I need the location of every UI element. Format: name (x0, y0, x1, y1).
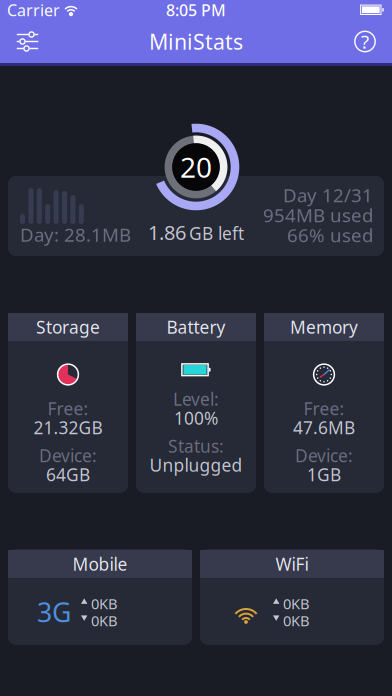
staticText: Unplugged (149, 453, 242, 476)
staticText: 20 (180, 148, 212, 186)
staticText: 66% used (287, 223, 373, 247)
staticText: Free: (47, 397, 88, 420)
staticText: 1.86 (148, 219, 186, 246)
staticText: 8:05 PM (166, 0, 226, 21)
staticText: 100% (174, 406, 218, 429)
staticText: Storage (36, 315, 100, 338)
staticText: 47.6MB (293, 416, 355, 439)
staticText: Day 12/31 (283, 183, 373, 207)
staticText: Level: (173, 387, 219, 410)
button[interactable]: Settings (0, 20, 53, 63)
staticText: 21.32GB (33, 416, 102, 439)
staticText: 1GB (307, 463, 341, 486)
staticText: 64GB (46, 463, 90, 486)
staticText: 0KB (283, 594, 310, 613)
staticText: Device: (295, 444, 353, 467)
staticText: ? (361, 29, 369, 54)
staticText: Device: (39, 444, 97, 467)
staticText: Free: (303, 397, 344, 420)
staticText: 954MB used (263, 203, 373, 227)
staticText: Day: 28.1MB (20, 222, 131, 247)
staticText: 3G (37, 594, 71, 630)
staticText: 0KB (91, 611, 118, 630)
button[interactable]: Help (340, 20, 392, 63)
staticText: GB left (189, 222, 244, 245)
staticText: WiFi (275, 552, 308, 575)
staticText: Carrier (7, 0, 60, 21)
staticText: Status: (168, 434, 224, 457)
staticText: 0KB (91, 594, 118, 613)
staticText: Memory (290, 315, 358, 338)
staticText: MiniStats (149, 27, 243, 56)
staticText: 0KB (283, 611, 310, 630)
staticText: Mobile (72, 552, 127, 575)
staticText: Battery (166, 315, 225, 338)
